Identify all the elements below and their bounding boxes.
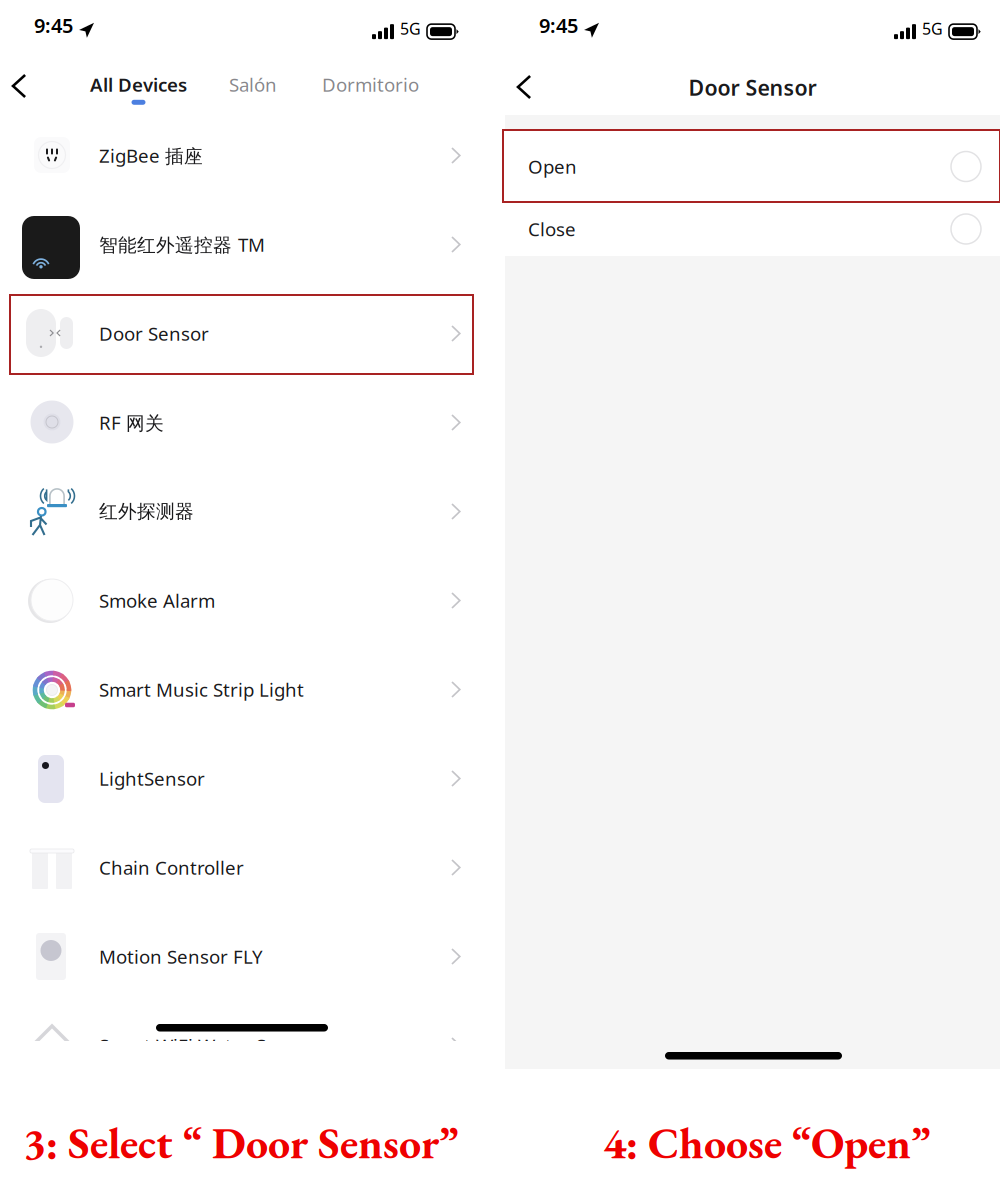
button[interactable]: Close <box>505 202 1000 256</box>
staticText: 5G <box>400 18 421 39</box>
staticText: All Devices <box>90 72 187 97</box>
staticText: Smoke Alarm <box>99 588 215 613</box>
staticText: RF 网关 <box>99 410 164 435</box>
staticText: 9:45 <box>34 12 73 39</box>
button[interactable]: Motion Sensor FLY <box>0 914 478 1003</box>
staticText: 5G <box>922 18 943 39</box>
button[interactable]: 红外探测器 <box>0 469 478 558</box>
button[interactable]: 智能红外遥控器 TM <box>0 202 478 291</box>
button[interactable]: Open <box>505 131 1000 202</box>
staticText: 4: Choose “Open” <box>603 1114 930 1171</box>
button[interactable]: Smoke Alarm <box>0 558 478 647</box>
staticText: Dormitorio <box>322 72 419 97</box>
button[interactable]: RF 网关 <box>0 380 478 469</box>
staticText: Motion Sensor FLY <box>99 944 263 969</box>
button[interactable]: Back <box>518 70 544 104</box>
button[interactable]: Chain Controller <box>0 825 478 914</box>
button[interactable]: Back <box>13 69 39 103</box>
staticText: 3: Select “ Door Sensor” <box>23 1114 458 1171</box>
staticText: ZigBee 插座 <box>99 143 203 168</box>
staticText: Smart WiFi Water S <box>99 1033 266 1058</box>
staticText: 红外探测器 <box>99 500 194 523</box>
staticText: Salón <box>229 72 277 97</box>
staticText: 智能红外遥控器 TM <box>99 232 265 257</box>
staticText: Open <box>528 154 577 179</box>
button[interactable]: ZigBee 插座 <box>0 113 478 202</box>
staticText: Close <box>528 217 576 241</box>
button[interactable]: Smart Music Strip Light <box>0 647 478 736</box>
staticText: Smart Music Strip Light <box>99 677 304 702</box>
button[interactable]: All Devices <box>90 72 187 102</box>
button[interactable]: Smart WiFi Water S <box>0 1003 478 1092</box>
staticText: LightSensor <box>99 766 205 791</box>
staticText: Door Sensor <box>99 321 209 346</box>
button[interactable]: Dormitorio <box>322 72 419 97</box>
button[interactable]: LightSensor <box>0 736 478 825</box>
button[interactable]: Door Sensor <box>0 291 478 380</box>
staticText: 9:45 <box>539 12 578 39</box>
staticText: Chain Controller <box>99 855 244 880</box>
button[interactable]: Salón <box>229 72 277 97</box>
staticText: Door Sensor <box>688 73 816 102</box>
